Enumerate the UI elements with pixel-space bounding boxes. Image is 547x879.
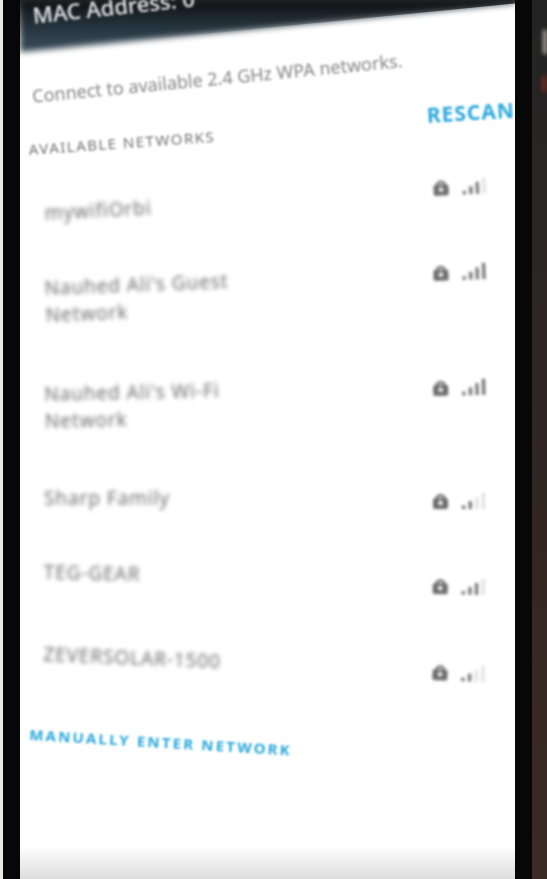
staticText: Connect to available 2.4 GHz WPA network… [31,48,404,109]
button[interactable]: RESCAN [426,96,515,130]
staticText: MANUALLY ENTER NETWORK [29,724,292,760]
staticText: Network [45,406,128,434]
button[interactable]: TEG-GEAR [43,559,384,592]
staticText: AVAILABLE NETWORKS [28,126,216,159]
button[interactable]: Nauhed Ali's Guest [44,262,386,327]
button[interactable]: Nauhed Ali's Wi-Fi [44,374,385,433]
staticText: Sharp Family [44,485,170,511]
staticText: RESCAN [426,96,515,130]
button[interactable]: mywifiOrbi [44,183,385,226]
staticText: TEG-GEAR [43,559,141,587]
staticText: MAC Address: 0 [31,0,196,30]
button[interactable]: ZEVERSOLAR-1500 [43,641,384,681]
staticText: Nauhed Ali's Wi-Fi [44,377,220,407]
button[interactable]: MANUALLY ENTER NETWORK [29,724,292,760]
staticText: ZEVERSOLAR-1500 [43,641,222,674]
staticText: Nauhed Ali's Guest [44,268,230,301]
staticText: Network [45,299,129,328]
staticText: mywifiOrbi [44,194,153,226]
button[interactable]: Sharp Family [44,485,384,511]
